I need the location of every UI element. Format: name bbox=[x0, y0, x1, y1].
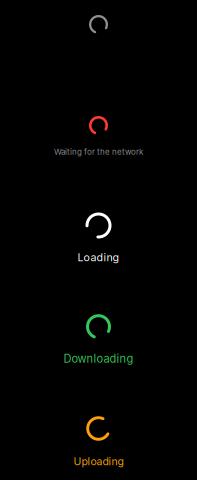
staticText: Uploading bbox=[73, 455, 123, 468]
staticText: Waiting for the network bbox=[54, 147, 143, 157]
staticText: Loading bbox=[77, 251, 119, 264]
staticText: Downloading bbox=[63, 352, 133, 365]
